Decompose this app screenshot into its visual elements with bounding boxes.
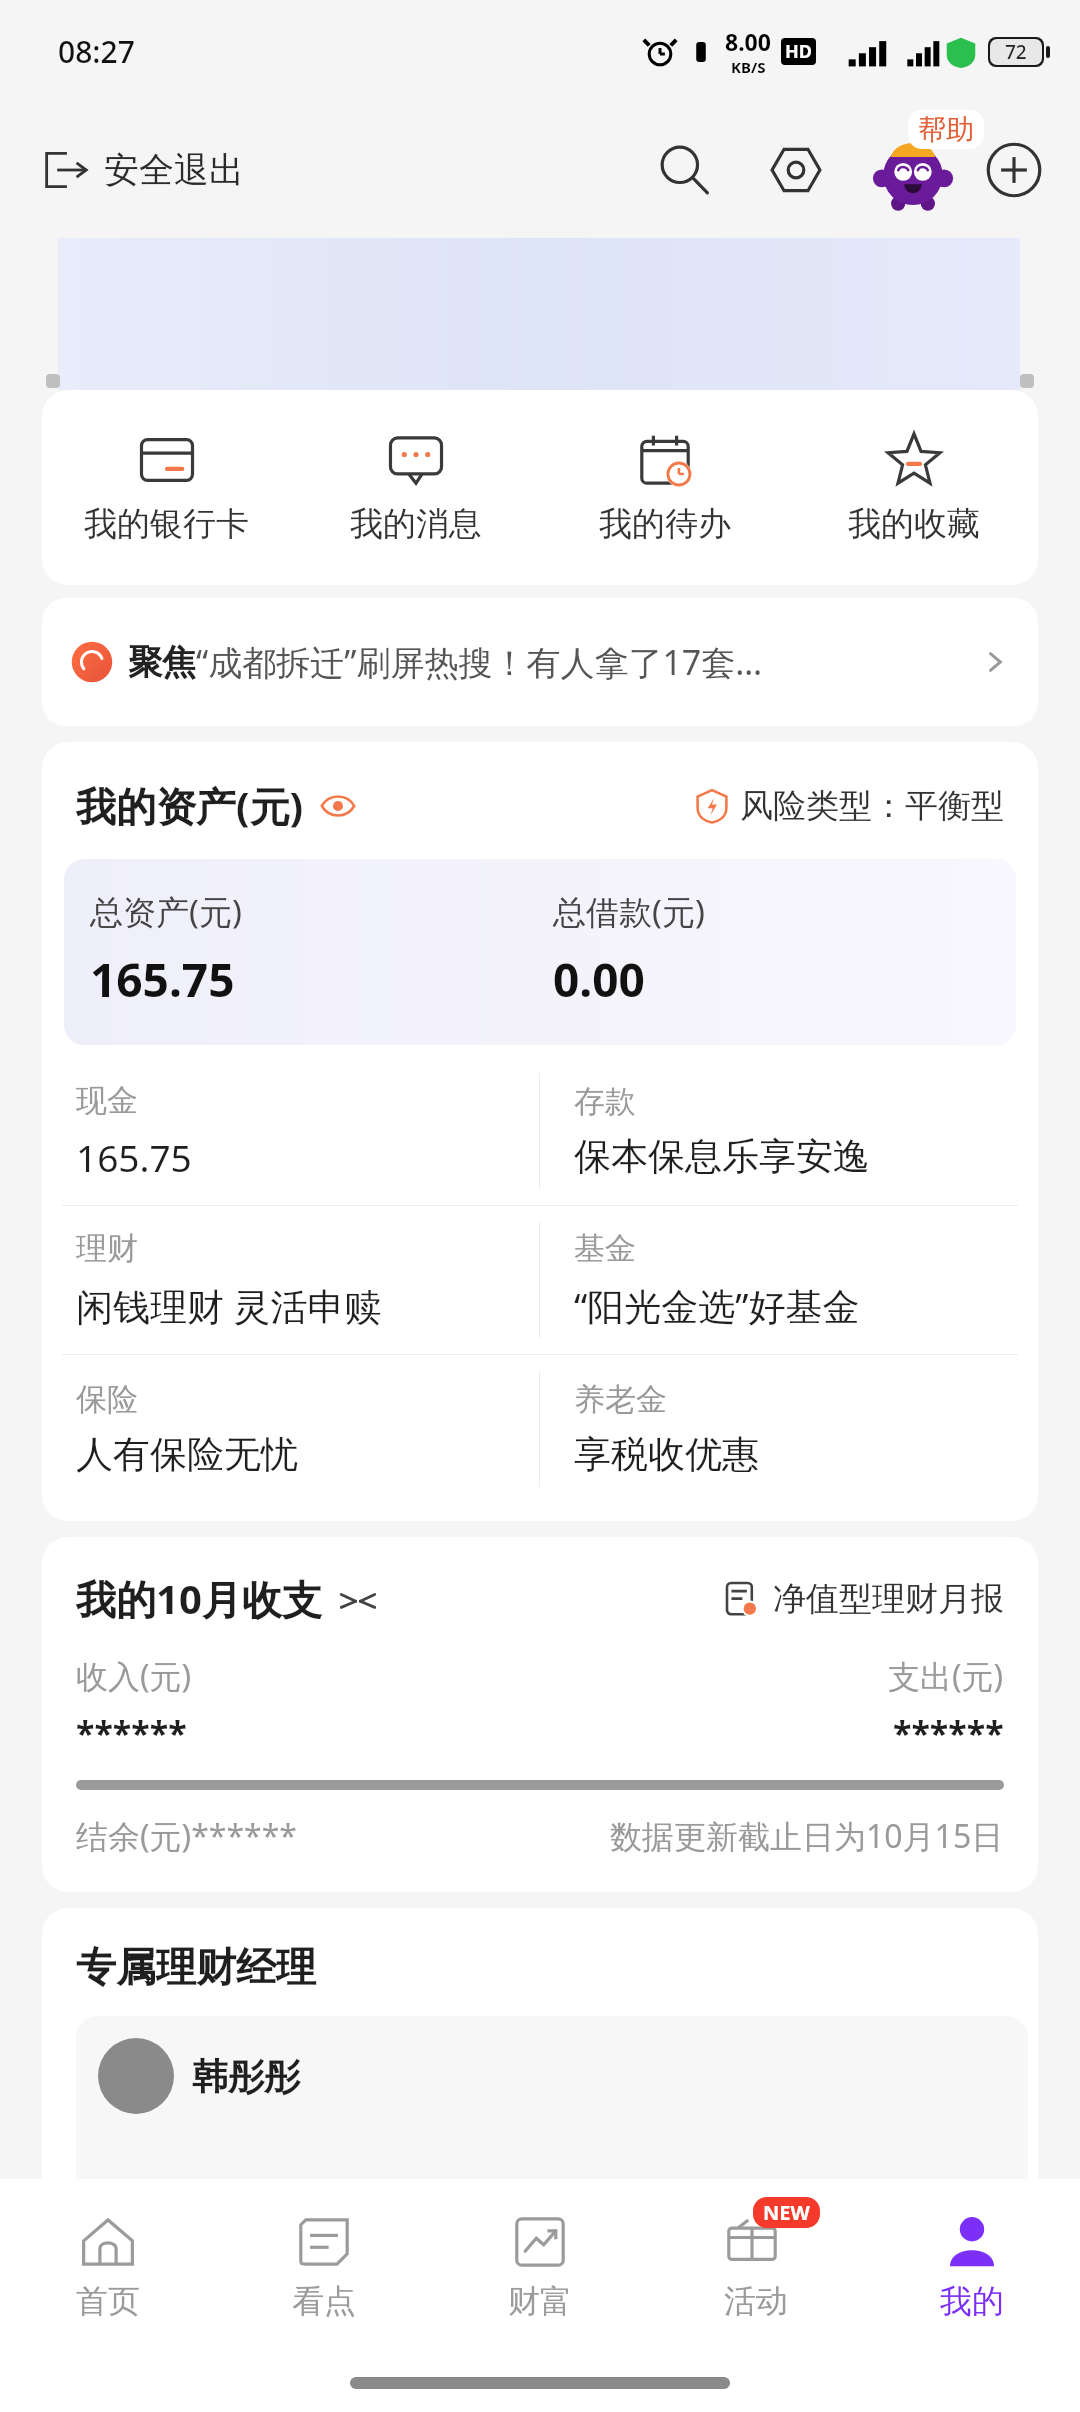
staticText: 数据更新截止日为10月15日: [610, 1814, 1004, 1858]
button[interactable]: 我的消息: [291, 390, 540, 585]
staticText: 72: [1005, 39, 1027, 65]
button[interactable]: 基金: [540, 1206, 1038, 1354]
staticText: 我的待办: [599, 503, 731, 545]
staticText: 165.75: [90, 948, 235, 1011]
button[interactable]: 净值型理财月报: [723, 1578, 1004, 1620]
button[interactable]: 聚焦: [42, 598, 1038, 726]
staticText: HD: [785, 39, 812, 64]
staticText: 存款: [574, 1082, 636, 1121]
button[interactable]: 安全退出: [44, 148, 244, 192]
staticText: 基金: [574, 1229, 636, 1268]
button[interactable]: 理财: [42, 1206, 539, 1354]
staticText: 保险: [76, 1380, 138, 1419]
button[interactable]: 保险: [42, 1355, 539, 1503]
staticText: 看点: [292, 2281, 356, 2321]
staticText: 人有保险无忧: [76, 1431, 298, 1478]
staticText: 08:27: [58, 31, 135, 72]
staticText: ******: [76, 1710, 187, 1756]
staticText: “阳光金选”好基金: [574, 1280, 860, 1331]
staticText: 活动: [724, 2281, 788, 2321]
staticText: 我的10月收支: [76, 1571, 322, 1626]
staticText: 风险类型：平衡型: [740, 785, 1004, 827]
staticText: 韩彤彤: [192, 2054, 300, 2099]
staticText: 财富: [508, 2281, 572, 2321]
staticText: 净值型理财月报: [773, 1578, 1004, 1620]
staticText: 专属理财经理: [76, 1942, 316, 1992]
staticText: 安全退出: [104, 148, 244, 192]
staticText: 首页: [76, 2281, 140, 2321]
button[interactable]: 我的收藏: [789, 390, 1038, 585]
staticText: 现金: [76, 1081, 138, 1120]
staticText: NEW: [763, 2199, 810, 2226]
staticText: 8.00: [725, 26, 771, 57]
staticText: 我的银行卡: [84, 503, 249, 545]
staticText: 0.00: [553, 948, 645, 1011]
button[interactable]: 财富: [432, 2179, 648, 2354]
button[interactable]: 搜索: [652, 138, 716, 202]
staticText: ******: [893, 1710, 1004, 1756]
button[interactable]: [58, 238, 1020, 390]
staticText: 理财: [76, 1229, 138, 1268]
staticText: “成都拆迁”刷屏热搜！有人拿了17套…: [196, 639, 763, 685]
staticText: KB/S: [731, 57, 766, 77]
staticText: 闲钱理财 灵活申赎: [76, 1280, 382, 1331]
button[interactable]: 首页: [0, 2179, 216, 2354]
staticText: 我的资产(元): [76, 778, 304, 833]
button[interactable]: 隐藏金额: [338, 1579, 378, 1619]
button[interactable]: NEW: [648, 2179, 864, 2354]
staticText: 165.75: [76, 1132, 192, 1182]
staticText: 保本保息乐享安逸: [574, 1133, 870, 1180]
button[interactable]: 设置: [764, 138, 828, 202]
staticText: 聚焦: [128, 641, 196, 684]
staticText: 我的消息: [350, 503, 482, 545]
button[interactable]: 现金: [42, 1057, 539, 1205]
staticText: 总借款(元): [553, 889, 705, 934]
staticText: 收入(元): [76, 1654, 192, 1698]
button[interactable]: 存款: [540, 1057, 1038, 1205]
staticText: 总资产(元): [90, 889, 242, 934]
button[interactable]: 养老金: [540, 1355, 1038, 1503]
button[interactable]: 帮助: [868, 125, 958, 215]
staticText: 我的: [940, 2281, 1004, 2321]
staticText: 帮助: [918, 112, 974, 147]
button[interactable]: 我的银行卡: [42, 390, 291, 585]
button[interactable]: 我的: [864, 2179, 1080, 2354]
staticText: 养老金: [574, 1380, 667, 1419]
button[interactable]: 风险类型：平衡型: [694, 785, 1004, 827]
button[interactable]: 添加: [982, 138, 1046, 202]
staticText: 支出(元): [888, 1654, 1004, 1698]
staticText: 享税收优惠: [574, 1431, 759, 1478]
staticText: 我的收藏: [848, 503, 980, 545]
button[interactable]: 显示金额: [318, 786, 358, 826]
button[interactable]: 我的待办: [540, 390, 789, 585]
staticText: 结余(元)******: [76, 1814, 297, 1858]
button[interactable]: 看点: [216, 2179, 432, 2354]
